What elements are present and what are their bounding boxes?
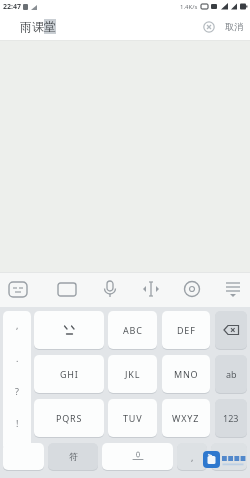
button[interactable]: ABC [108,311,157,349]
button[interactable] [3,443,44,470]
button[interactable]: , [3,311,31,470]
button[interactable] [34,311,104,349]
button[interactable] [8,280,28,299]
staticText: 22:47 [3,2,21,12]
button[interactable] [223,280,243,299]
staticText: 123 [223,412,239,424]
staticText: MNO [174,368,199,380]
staticText: ABC [123,324,143,336]
button[interactable] [211,443,247,470]
staticText: DEF [177,324,196,336]
button[interactable]: WXYZ [162,399,210,437]
button[interactable]: , [177,443,207,470]
staticText: WXYZ [172,412,200,424]
staticText: , [191,451,194,463]
staticText: ! [16,417,19,429]
button[interactable]: ab [215,355,247,393]
button[interactable] [102,443,173,470]
button[interactable]: TUV [108,399,157,437]
button[interactable]: DEF [162,311,210,349]
button[interactable] [141,280,161,299]
staticText: GHI [60,368,79,380]
staticText: 1.4K/s [180,3,198,11]
button[interactable]: GHI [34,355,104,393]
button[interactable] [215,311,247,349]
button[interactable] [100,280,120,299]
staticText: ? [15,385,19,397]
staticText: . [16,352,19,364]
staticText: 符 [69,451,78,462]
button[interactable] [182,280,202,299]
staticText: 雨课 [20,19,44,34]
staticText: TUV [123,412,143,424]
button[interactable]: 雨课 [20,19,56,34]
button[interactable]: 123 [215,399,247,437]
button[interactable] [57,280,77,299]
staticText: , [16,319,19,331]
staticText: 取消 [225,21,243,32]
button[interactable]: MNO [162,355,210,393]
button[interactable]: 取消 [225,21,243,32]
button[interactable] [203,21,215,33]
staticText: 堂 [44,19,56,34]
staticText: ab [226,368,237,380]
staticText: JKL [125,368,141,380]
button[interactable]: PQRS [34,399,104,437]
staticText: PQRS [56,412,83,424]
button[interactable]: JKL [108,355,157,393]
button[interactable]: 符 [48,443,98,470]
